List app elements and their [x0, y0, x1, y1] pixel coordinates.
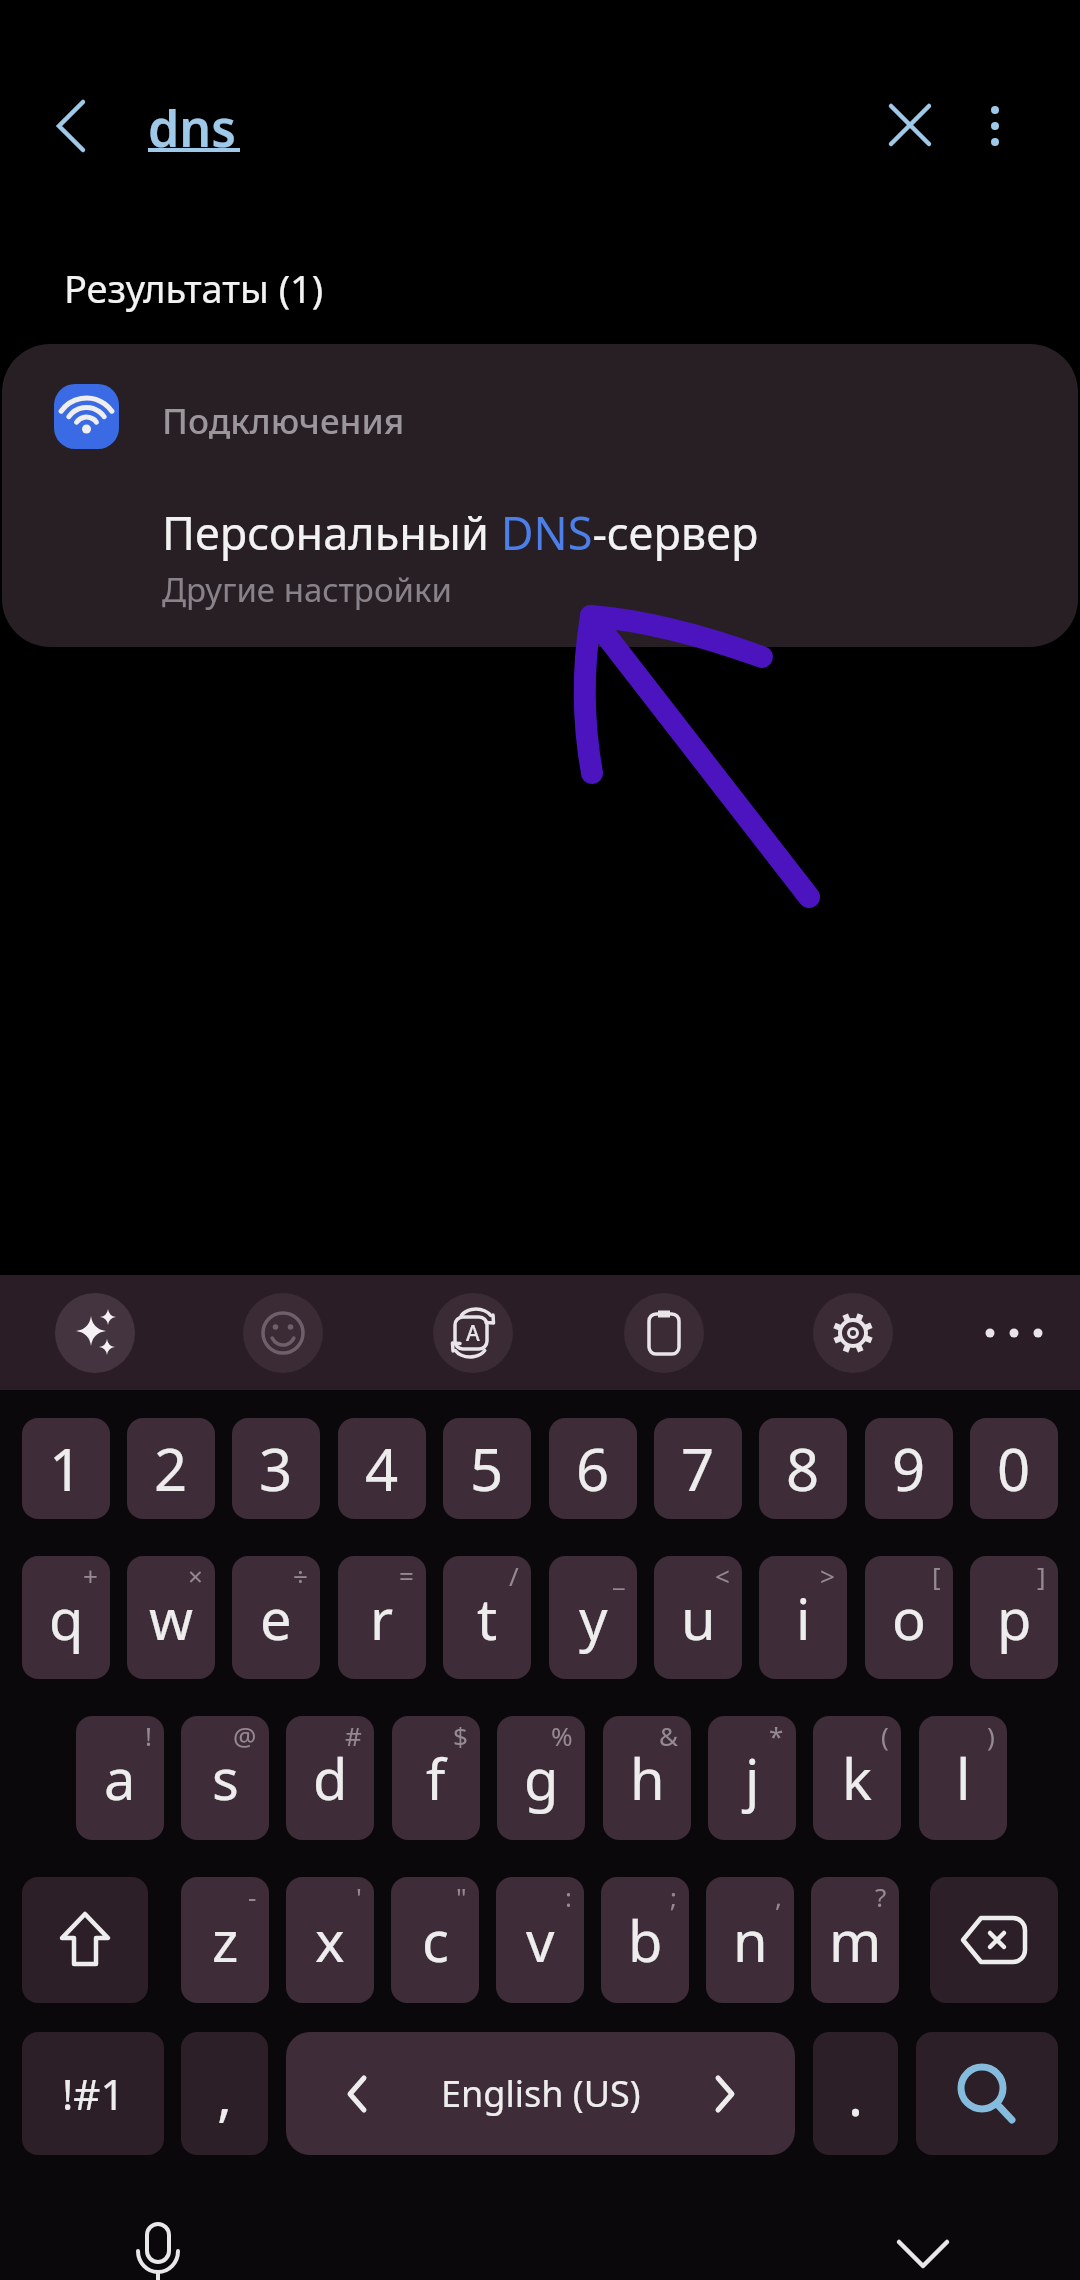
button[interactable]: t: [443, 1556, 531, 1679]
button[interactable]: [243, 1293, 323, 1373]
button[interactable]: p: [970, 1556, 1058, 1679]
button[interactable]: k: [813, 1716, 901, 1840]
staticText: $: [453, 1718, 468, 1753]
button[interactable]: s: [181, 1716, 269, 1840]
button[interactable]: [896, 2238, 950, 2272]
staticText: +: [83, 1558, 98, 1593]
button[interactable]: h: [603, 1716, 691, 1840]
button[interactable]: 2: [127, 1418, 215, 1519]
staticText: k: [842, 1740, 872, 1816]
staticText: [: [932, 1558, 941, 1593]
button[interactable]: o: [865, 1556, 953, 1679]
button[interactable]: f: [392, 1716, 480, 1840]
staticText: t: [477, 1580, 498, 1656]
staticText: ?: [875, 1879, 887, 1914]
staticText: 5: [470, 1429, 504, 1508]
button[interactable]: [132, 2222, 184, 2280]
staticText: Подключения: [162, 397, 405, 445]
button[interactable]: Подключения: [2, 344, 1078, 647]
staticText: /: [509, 1558, 519, 1593]
button[interactable]: 1: [22, 1418, 110, 1519]
staticText: 2: [154, 1429, 188, 1508]
staticText: n: [733, 1902, 768, 1978]
button[interactable]: [55, 1293, 135, 1373]
staticText: d: [313, 1740, 348, 1816]
staticText: -: [248, 1879, 257, 1914]
staticText: l: [956, 1740, 971, 1816]
button[interactable]: j: [708, 1716, 796, 1840]
staticText: A: [466, 1319, 480, 1348]
button[interactable]: [978, 1313, 1058, 1353]
button[interactable]: d: [286, 1716, 374, 1840]
staticText: <: [715, 1558, 730, 1593]
button[interactable]: .: [813, 2032, 898, 2155]
staticText: ;: [670, 1879, 677, 1914]
staticText: English (US): [441, 2069, 641, 2118]
staticText: 6: [576, 1429, 610, 1508]
staticText: ": [456, 1879, 467, 1914]
button[interactable]: 4: [338, 1418, 426, 1519]
staticText: #: [345, 1718, 362, 1753]
staticText: 1: [49, 1429, 83, 1508]
staticText: ÷: [293, 1558, 308, 1593]
button[interactable]: u: [654, 1556, 742, 1679]
button[interactable]: !#1: [22, 2032, 164, 2155]
staticText: p: [997, 1580, 1032, 1656]
button[interactable]: [813, 1293, 893, 1373]
button[interactable]: r: [338, 1556, 426, 1679]
button[interactable]: g: [497, 1716, 585, 1840]
button[interactable]: 9: [865, 1418, 953, 1519]
button[interactable]: z: [181, 1877, 269, 2003]
staticText: ×: [188, 1558, 203, 1593]
button[interactable]: ,: [181, 2032, 268, 2155]
staticText: g: [524, 1740, 559, 1816]
staticText: Персональный DNS-сервер: [162, 502, 759, 563]
staticText: (: [881, 1718, 889, 1753]
staticText: ,: [775, 1879, 782, 1914]
staticText: f: [426, 1740, 446, 1816]
button[interactable]: [624, 1293, 704, 1373]
button[interactable]: A: [433, 1293, 513, 1373]
staticText: *: [769, 1718, 784, 1753]
staticText: h: [630, 1740, 665, 1816]
button[interactable]: n: [706, 1877, 794, 2003]
button[interactable]: m: [811, 1877, 899, 2003]
button[interactable]: c: [391, 1877, 479, 2003]
button[interactable]: [22, 1877, 148, 2003]
staticText: x: [315, 1902, 345, 1978]
staticText: &: [659, 1718, 679, 1753]
button[interactable]: q: [22, 1556, 110, 1679]
staticText: j: [745, 1740, 760, 1816]
staticText: .: [848, 2056, 864, 2132]
button[interactable]: 3: [232, 1418, 320, 1519]
button[interactable]: y: [549, 1556, 637, 1679]
button[interactable]: a: [76, 1716, 164, 1840]
button[interactable]: dns: [148, 94, 236, 162]
button[interactable]: [56, 100, 86, 152]
button[interactable]: 0: [970, 1418, 1058, 1519]
button[interactable]: [975, 100, 1015, 152]
staticText: c: [422, 1902, 449, 1978]
staticText: m: [829, 1902, 882, 1978]
button[interactable]: 6: [549, 1418, 637, 1519]
button[interactable]: [930, 1877, 1058, 2003]
button[interactable]: 5: [443, 1418, 531, 1519]
staticText: s: [212, 1740, 239, 1816]
button[interactable]: English (US): [286, 2032, 795, 2155]
button[interactable]: w: [127, 1556, 215, 1679]
button[interactable]: 8: [759, 1418, 847, 1519]
staticText: z: [212, 1902, 239, 1978]
button[interactable]: l: [919, 1716, 1007, 1840]
staticText: %: [551, 1718, 573, 1753]
staticText: dns: [148, 94, 236, 162]
button[interactable]: e: [232, 1556, 320, 1679]
button[interactable]: b: [601, 1877, 689, 2003]
staticText: u: [681, 1580, 716, 1656]
button[interactable]: [916, 2032, 1058, 2155]
button[interactable]: i: [759, 1556, 847, 1679]
button[interactable]: x: [286, 1877, 374, 2003]
button[interactable]: v: [496, 1877, 584, 2003]
button[interactable]: [890, 105, 930, 145]
button[interactable]: 7: [654, 1418, 742, 1519]
staticText: b: [628, 1902, 663, 1978]
